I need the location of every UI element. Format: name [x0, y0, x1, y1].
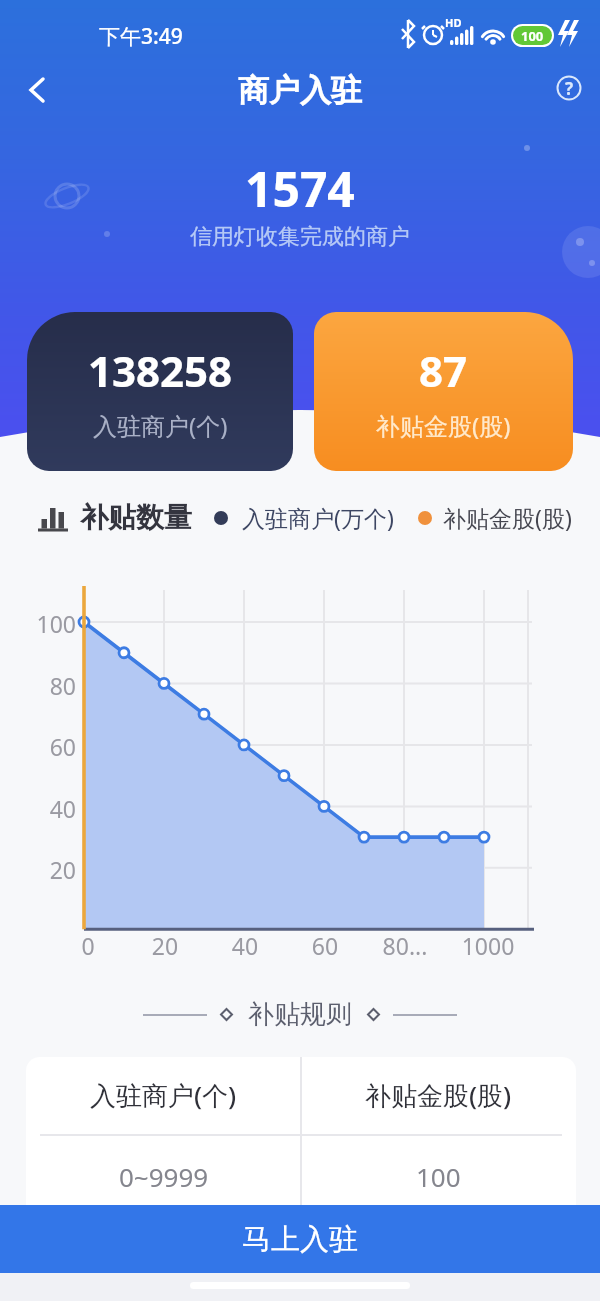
staticText: 80... [360, 930, 450, 961]
staticText: 下午3:49 [99, 22, 183, 51]
staticText: 商户入驻 [238, 71, 362, 110]
staticText: 入驻商户(个) [90, 1077, 237, 1113]
button[interactable]: 138258 [27, 312, 293, 471]
staticText: 60 [30, 731, 76, 762]
staticText: 1574 [245, 156, 355, 221]
staticText: 20 [120, 930, 210, 961]
button[interactable]: 87 [314, 312, 573, 471]
button[interactable]: 马上入驻 [0, 1205, 600, 1273]
staticText: 20 [30, 854, 76, 885]
staticText: 87 [419, 342, 468, 399]
staticText: 138258 [88, 342, 233, 399]
staticText: 100 [521, 27, 544, 45]
staticText: 补贴数量 [80, 500, 192, 535]
staticText: 马上入驻 [242, 1221, 358, 1258]
staticText: 100 [416, 1159, 461, 1194]
staticText: 0~9999 [119, 1159, 209, 1194]
staticText: 补贴金股(股) [443, 502, 572, 533]
staticText: 信用灯收集完成的商户 [190, 223, 410, 251]
staticText: 补贴金股(股) [365, 1077, 512, 1113]
staticText: 0 [43, 930, 133, 961]
staticText: 入驻商户(万个) [242, 502, 394, 533]
staticText: 补贴规则 [248, 998, 352, 1031]
staticText: 40 [200, 930, 290, 961]
staticText: 80 [30, 670, 76, 701]
staticText: ? [565, 77, 574, 100]
staticText: HD [445, 15, 462, 30]
button[interactable] [24, 76, 52, 104]
staticText: 补贴金股(股) [376, 409, 511, 442]
button[interactable]: ? [553, 72, 585, 104]
staticText: 60 [280, 930, 370, 961]
staticText: 100 [30, 608, 76, 639]
staticText: 1000 [443, 930, 533, 961]
staticText: 40 [30, 793, 76, 824]
staticText: 入驻商户(个) [93, 409, 228, 442]
